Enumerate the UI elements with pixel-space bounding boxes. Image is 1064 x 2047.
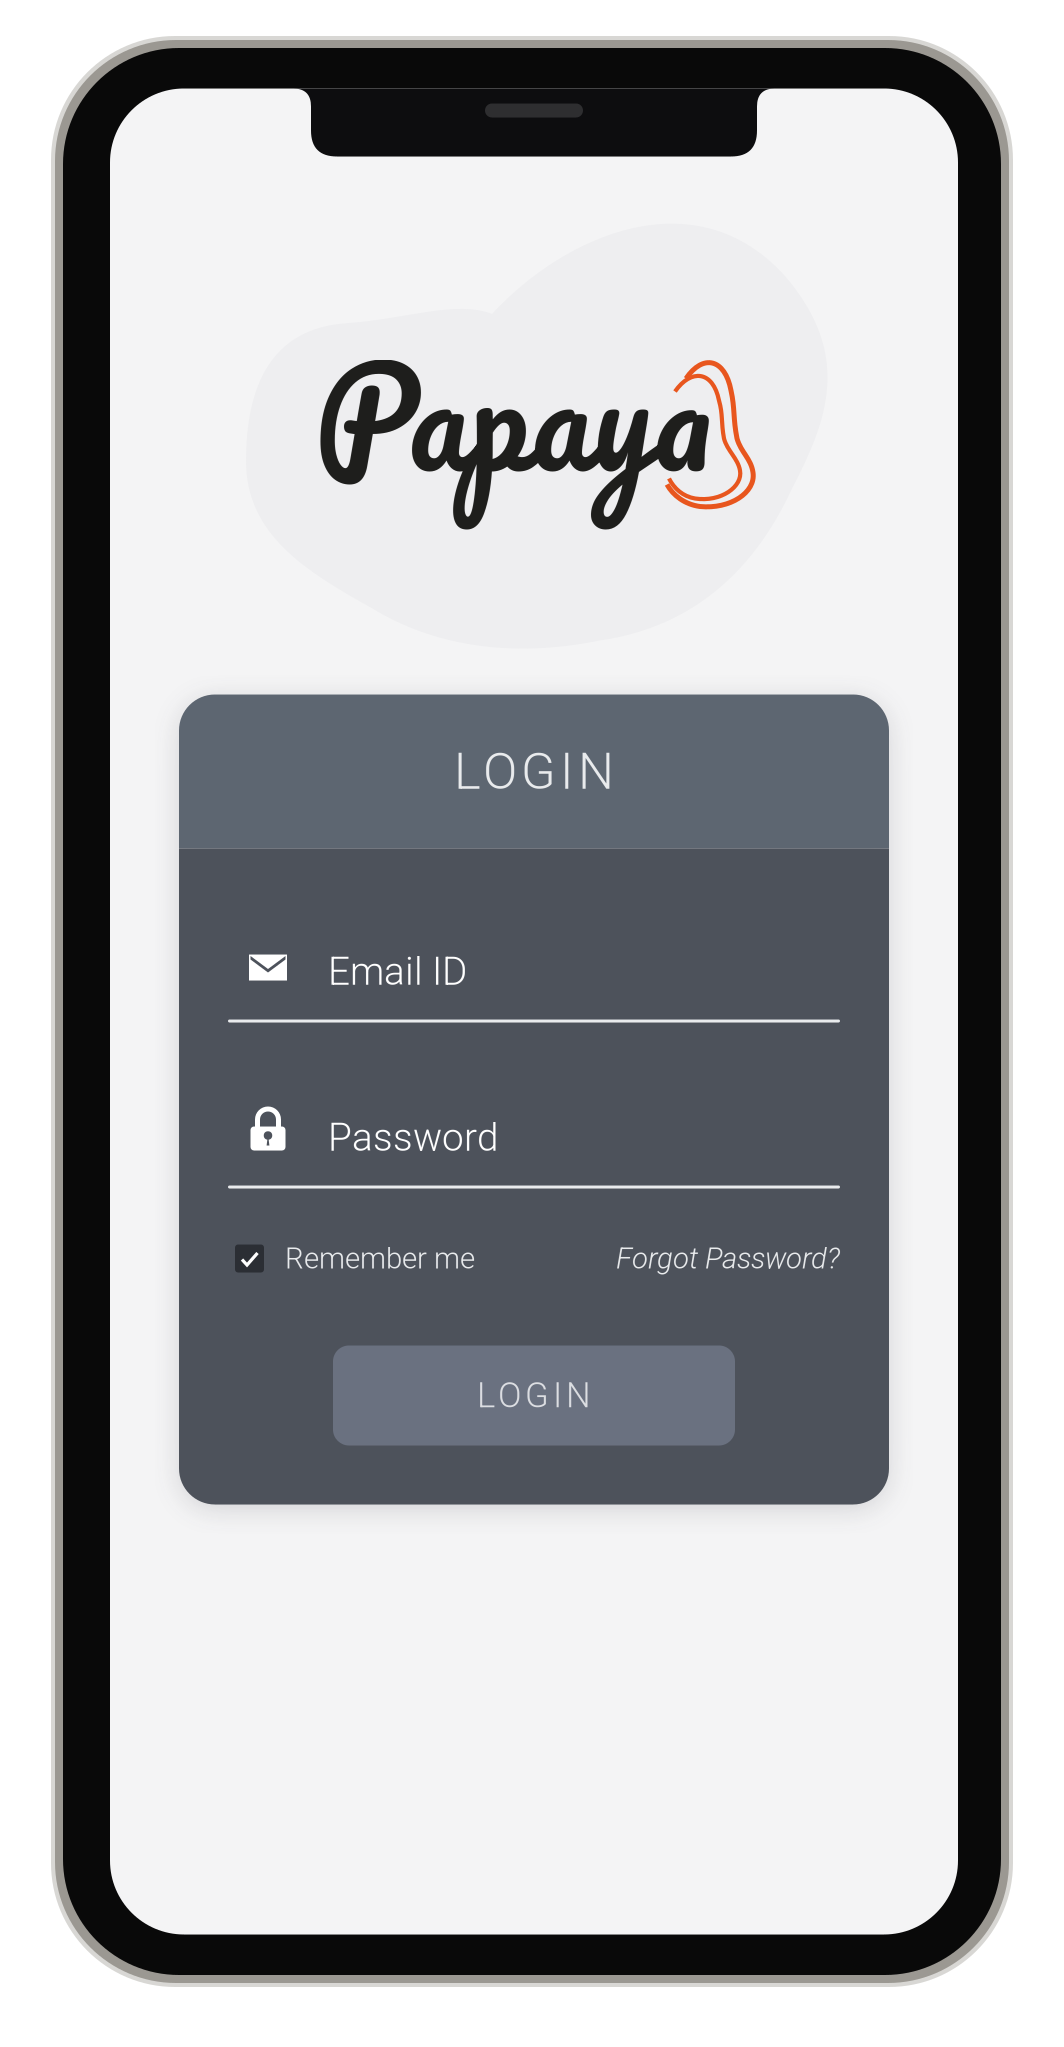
staticText: Papaya bbox=[314, 302, 711, 529]
staticText: Email ID bbox=[328, 949, 467, 994]
staticText: LOGIN bbox=[477, 1375, 591, 1416]
staticText: Remember me bbox=[285, 1241, 475, 1276]
button[interactable]: LOGIN bbox=[333, 1345, 735, 1445]
staticText: Password bbox=[328, 1115, 498, 1160]
button[interactable]: Forgot Password? bbox=[616, 1237, 840, 1279]
staticText: Forgot Password? bbox=[616, 1241, 840, 1276]
button[interactable]: Remember me bbox=[235, 1237, 475, 1279]
staticText: LOGIN bbox=[454, 742, 614, 801]
